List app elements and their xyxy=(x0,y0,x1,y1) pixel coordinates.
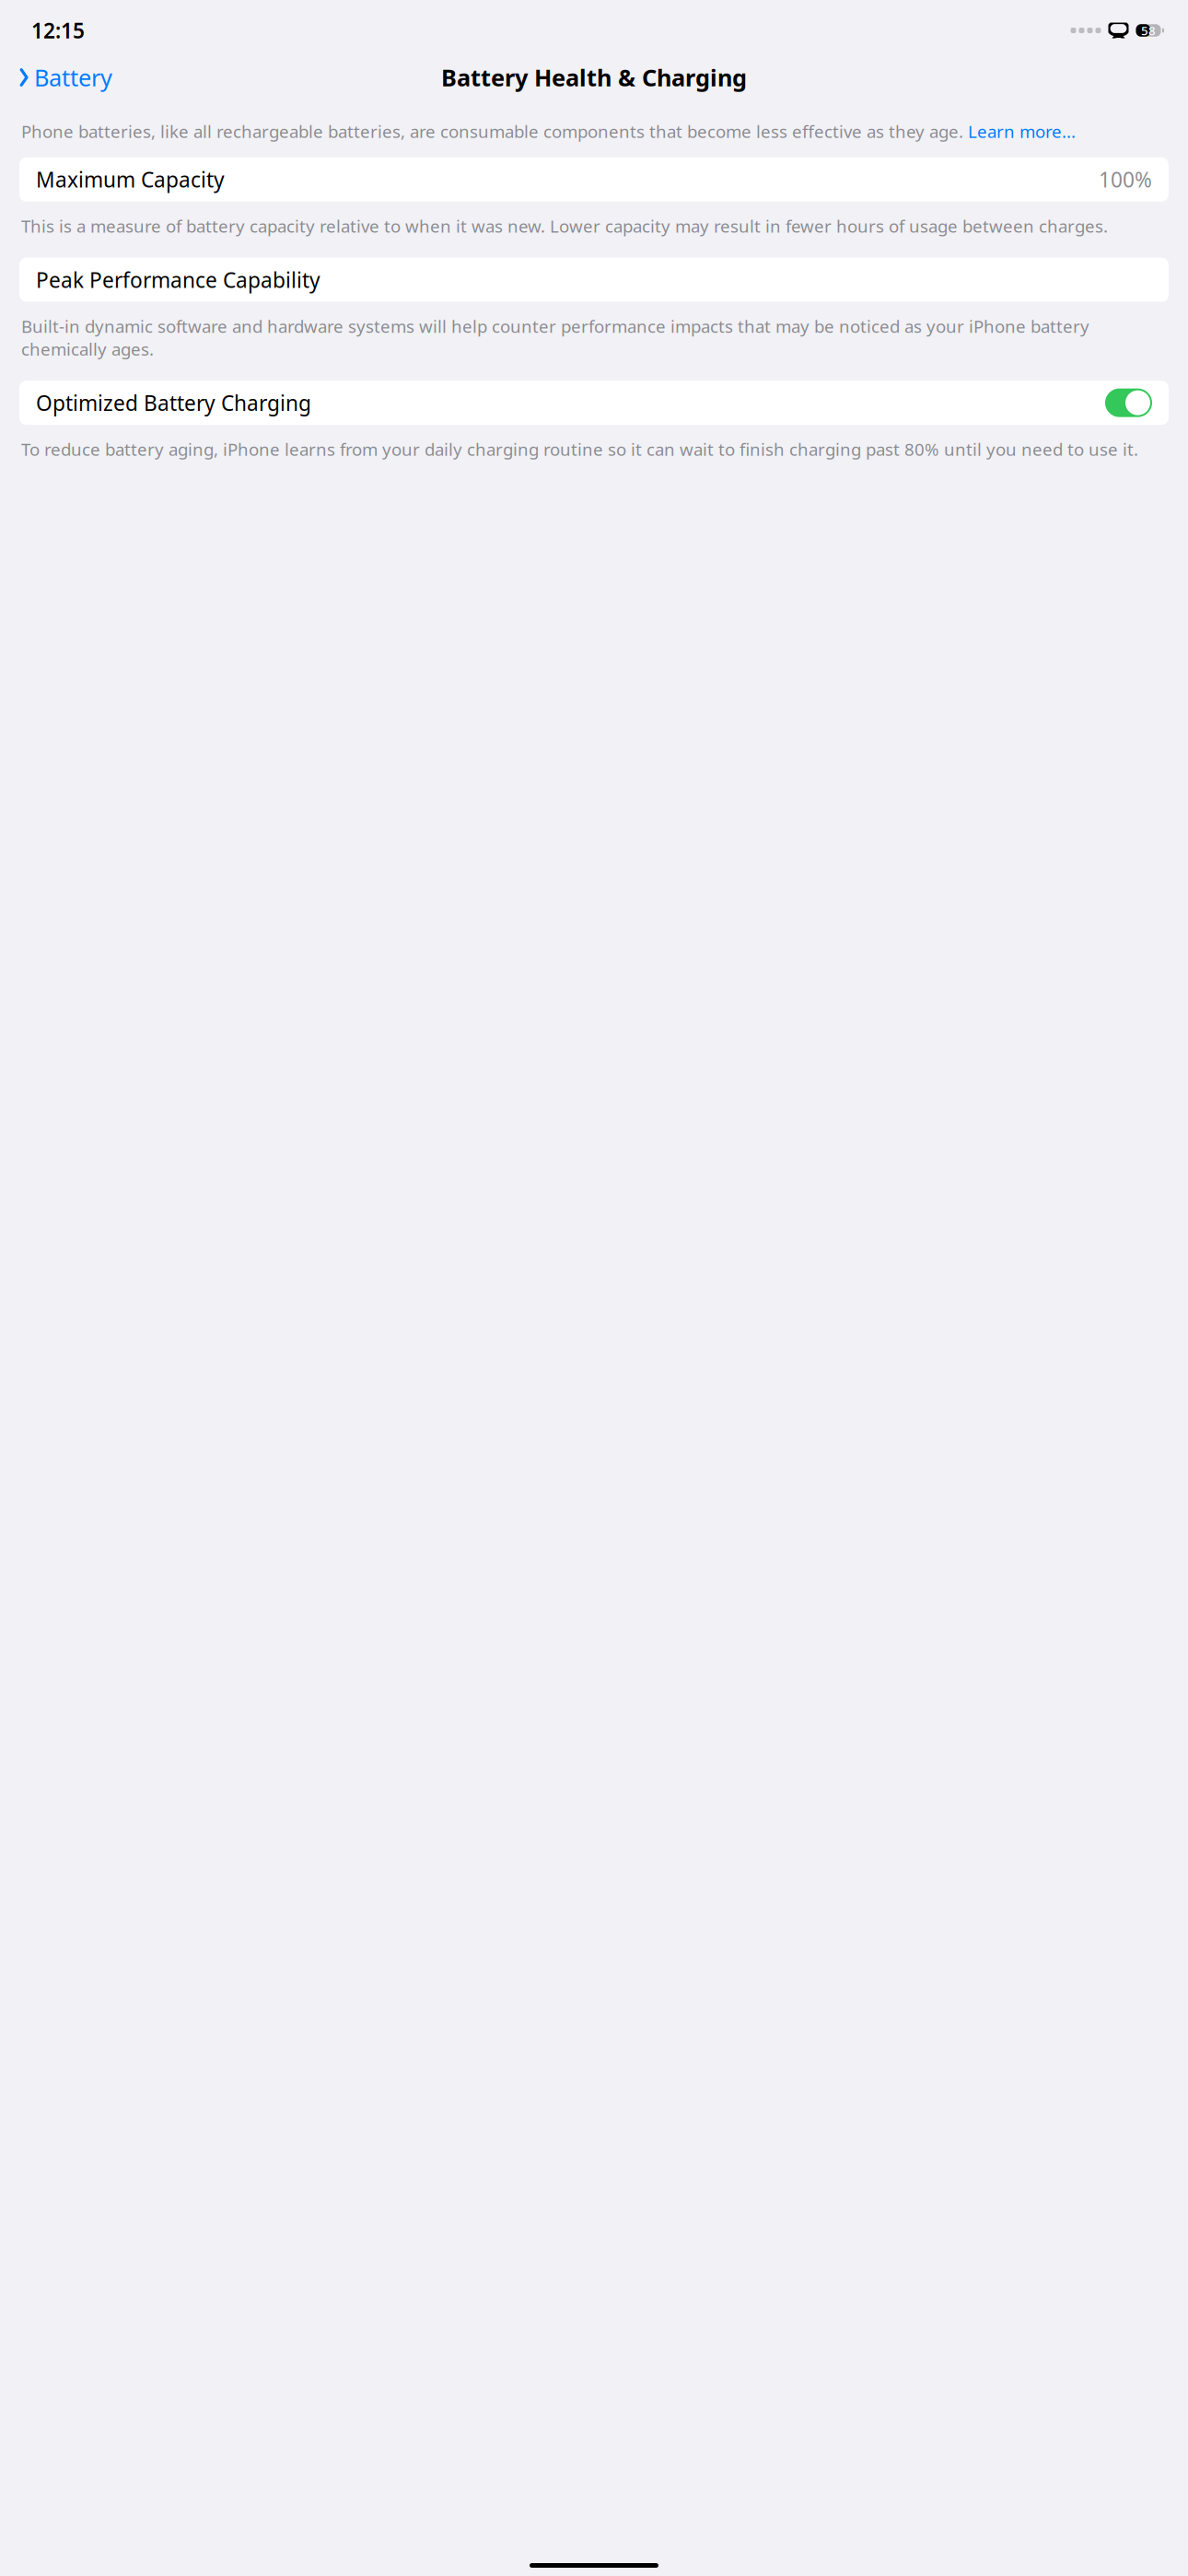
staticText: This is a measure of battery capacity re… xyxy=(21,214,1108,237)
staticText: Peak Performance Capability xyxy=(36,266,320,294)
staticText: 100% xyxy=(1099,166,1152,193)
button[interactable]: Optimized Battery Charging xyxy=(0,381,1188,425)
staticText: Built-in dynamic software and hardware s… xyxy=(21,315,1089,360)
button[interactable]: Optimized Battery Charging, on xyxy=(1105,389,1152,417)
staticText: Optimized Battery Charging xyxy=(36,389,311,417)
staticText: Phone batteries, like all rechargeable b… xyxy=(21,120,968,143)
staticText: 58 xyxy=(1141,22,1156,39)
staticText: Battery xyxy=(34,62,112,93)
staticText: 12:15 xyxy=(31,16,85,44)
staticText: Battery Health & Charging xyxy=(441,62,747,93)
button[interactable]: Battery xyxy=(13,56,118,98)
staticText: Learn more... xyxy=(968,120,1076,143)
button[interactable]: Peak Performance Capability xyxy=(0,258,1188,302)
staticText: To reduce battery aging, iPhone learns f… xyxy=(21,438,1138,461)
button[interactable]: Maximum Capacity xyxy=(0,157,1188,202)
staticText: Maximum Capacity xyxy=(36,166,225,193)
